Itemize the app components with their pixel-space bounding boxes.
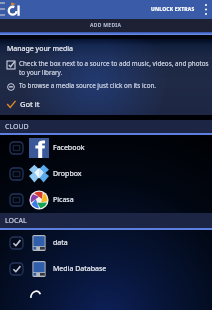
staticText: Media Database bbox=[53, 264, 107, 274]
staticText: Facebook bbox=[53, 143, 85, 153]
staticText: Manage your media bbox=[7, 44, 73, 54]
staticText: Got it bbox=[20, 99, 40, 109]
staticText: LOCAL bbox=[5, 216, 27, 226]
staticText: To browse a media source just click on i… bbox=[19, 81, 157, 90]
other: App logo bbox=[7, 2, 21, 17]
button[interactable]: Facebook bbox=[0, 135, 212, 161]
button[interactable]: Dropbox bbox=[0, 161, 212, 187]
button[interactable]: More options bbox=[200, 0, 212, 19]
button[interactable]: UNLOCK EXTRAS bbox=[146, 2, 200, 17]
button[interactable]: ADD MEDIA bbox=[0, 19, 212, 32]
button[interactable]: data bbox=[0, 230, 212, 256]
button[interactable]: Picasa bbox=[0, 187, 212, 213]
button[interactable]: Media Database bbox=[0, 256, 212, 282]
staticText: UNLOCK EXTRAS bbox=[151, 6, 195, 13]
button[interactable]: Navigation menu bbox=[0, 0, 7, 19]
staticText: ADD MEDIA bbox=[90, 22, 122, 29]
staticText: CLOUD bbox=[5, 122, 29, 132]
button[interactable]: Got it bbox=[7, 99, 40, 109]
staticText: Dropbox bbox=[53, 169, 82, 179]
staticText: Check the box next to a source to add mu… bbox=[19, 59, 212, 77]
staticText: data bbox=[53, 238, 68, 248]
staticText: Picasa bbox=[53, 195, 74, 205]
